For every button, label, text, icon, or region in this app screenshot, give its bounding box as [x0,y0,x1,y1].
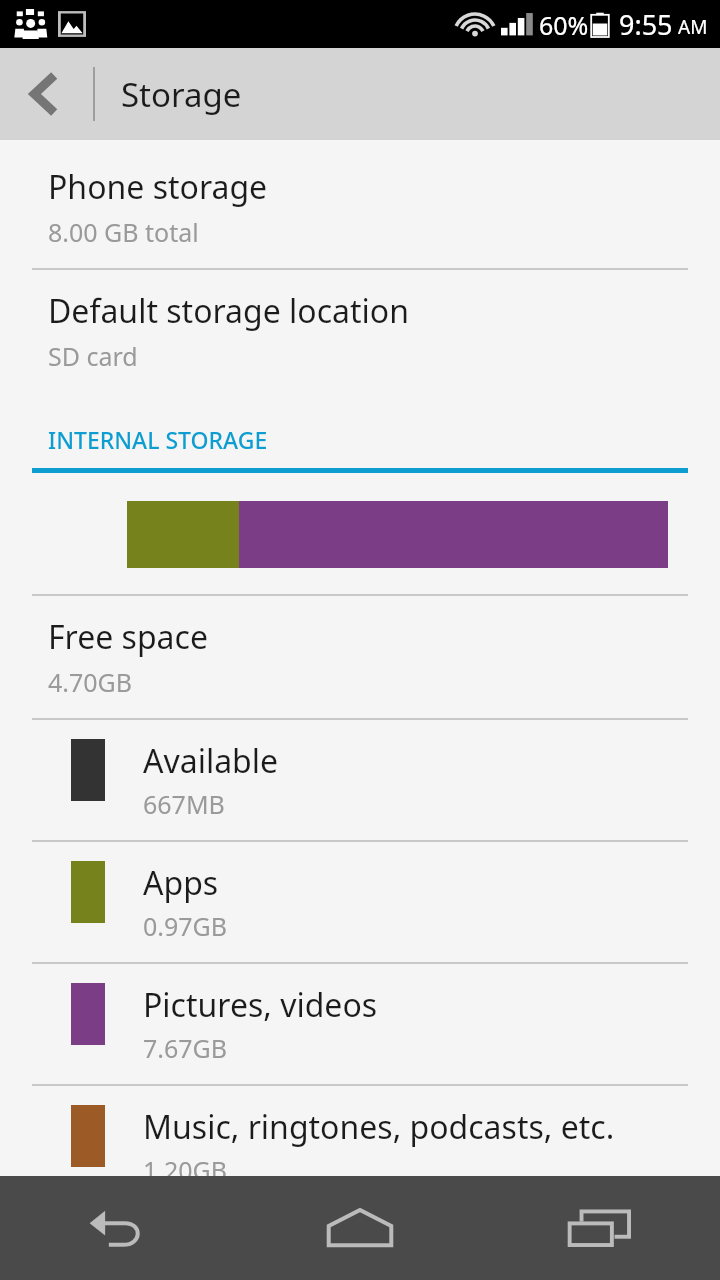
staticText: 0.97GB [143,909,228,943]
staticText: 9:55 [619,6,673,43]
button[interactable]: Apps [0,842,720,962]
staticText: SD card [48,339,138,373]
button[interactable]: Music, ringtones, podcasts, etc. [0,1086,720,1206]
staticText: Apps [143,861,219,905]
button[interactable]: Pictures, videos [0,964,720,1084]
button[interactable]: Available [0,720,720,840]
staticText: 667MB [143,787,225,821]
staticText: 4.70GB [48,665,133,699]
button[interactable]: Recent apps [480,1176,720,1280]
staticText: AM [678,14,708,40]
staticText: Phone storage [48,165,268,209]
staticText: 60% [539,8,589,42]
button[interactable]: Home [240,1176,480,1280]
button[interactable]: Default storage location [0,270,720,392]
button[interactable]: Back [0,1176,240,1280]
button[interactable]: Phone storage [0,146,720,268]
staticText: Storage [121,72,242,117]
staticText: Music, ringtones, podcasts, etc. [143,1105,615,1149]
staticText: INTERNAL STORAGE [48,424,268,455]
staticText: Available [143,739,279,783]
staticText: 1.20GB [143,1153,228,1187]
staticText: 8.00 GB total [48,215,199,249]
staticText: Pictures, videos [143,983,378,1027]
button[interactable]: Free space [0,596,720,718]
staticText: Default storage location [48,289,409,333]
button[interactable]: Back [0,48,88,140]
staticText: Free space [48,615,208,659]
staticText: 7.67GB [143,1031,228,1065]
